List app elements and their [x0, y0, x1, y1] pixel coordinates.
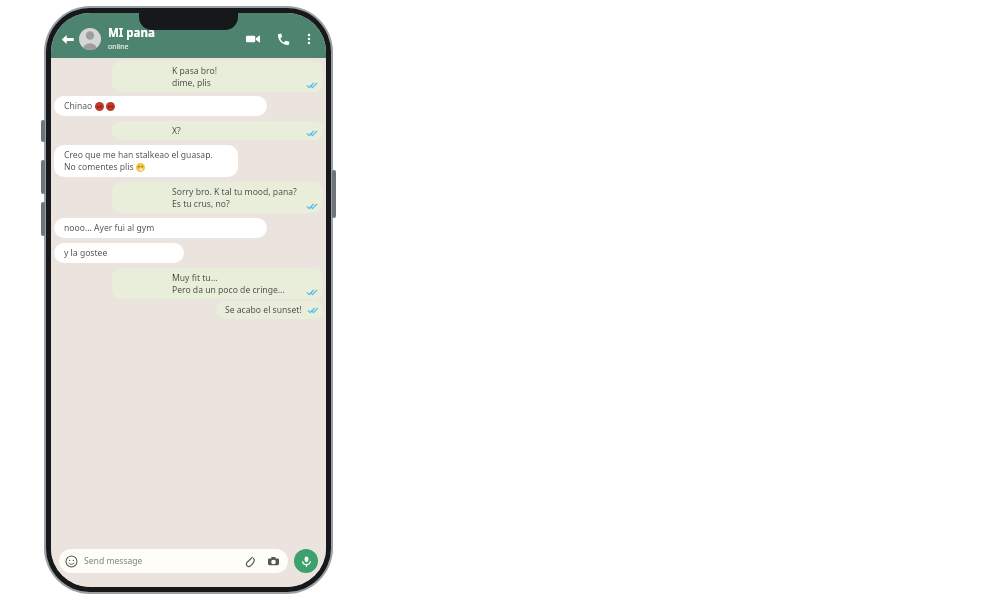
button[interactable]: Send message — [59, 549, 288, 573]
staticText: nooo... Ayer fui al gym — [64, 222, 155, 234]
button[interactable]: Profile photo — [79, 28, 101, 50]
staticText: Se acabo el sunset! — [225, 304, 302, 316]
staticText: y la gostee — [64, 247, 108, 259]
button[interactable]: Back — [57, 29, 77, 49]
staticText: K pasa bro! — [172, 65, 218, 77]
staticText: Creo que me han stalkeao el guasap. — [64, 149, 213, 161]
staticText: dime, plis — [172, 77, 211, 89]
button[interactable]: Record voice message — [294, 549, 318, 573]
staticText: MI pana — [108, 25, 155, 41]
button[interactable]: Video call — [242, 28, 264, 50]
button[interactable]: y la gostee — [54, 243, 184, 263]
staticText: Chinao — [64, 100, 95, 112]
staticText: X? — [172, 125, 181, 137]
button[interactable]: Creo que me han stalkeao el guasap. — [54, 145, 238, 177]
button[interactable]: nooo... Ayer fui al gym — [54, 218, 267, 238]
staticText: No comentes plis — [64, 161, 136, 173]
button[interactable]: Chinao — [54, 96, 267, 116]
button[interactable]: Camera — [265, 553, 281, 569]
button[interactable]: Sorry bro. K tal tu mood, pana? — [112, 182, 323, 213]
staticText: online — [108, 42, 129, 52]
staticText: Send message — [84, 555, 242, 567]
button[interactable]: K pasa bro! — [112, 61, 323, 92]
button[interactable]: Voice call — [272, 28, 294, 50]
button[interactable]: Muy fit tu... — [112, 268, 323, 299]
staticText: Muy fit tu... — [172, 272, 218, 284]
button[interactable]: More options — [300, 30, 318, 48]
button[interactable]: Attach — [242, 553, 258, 569]
staticText: Pero da un poco de cringe... — [172, 284, 285, 296]
button[interactable]: X? — [112, 121, 323, 140]
staticText: Sorry bro. K tal tu mood, pana? — [172, 186, 297, 198]
staticText: Es tu crus, no? — [172, 198, 230, 210]
button[interactable]: Se acabo el sunset! — [216, 301, 323, 319]
